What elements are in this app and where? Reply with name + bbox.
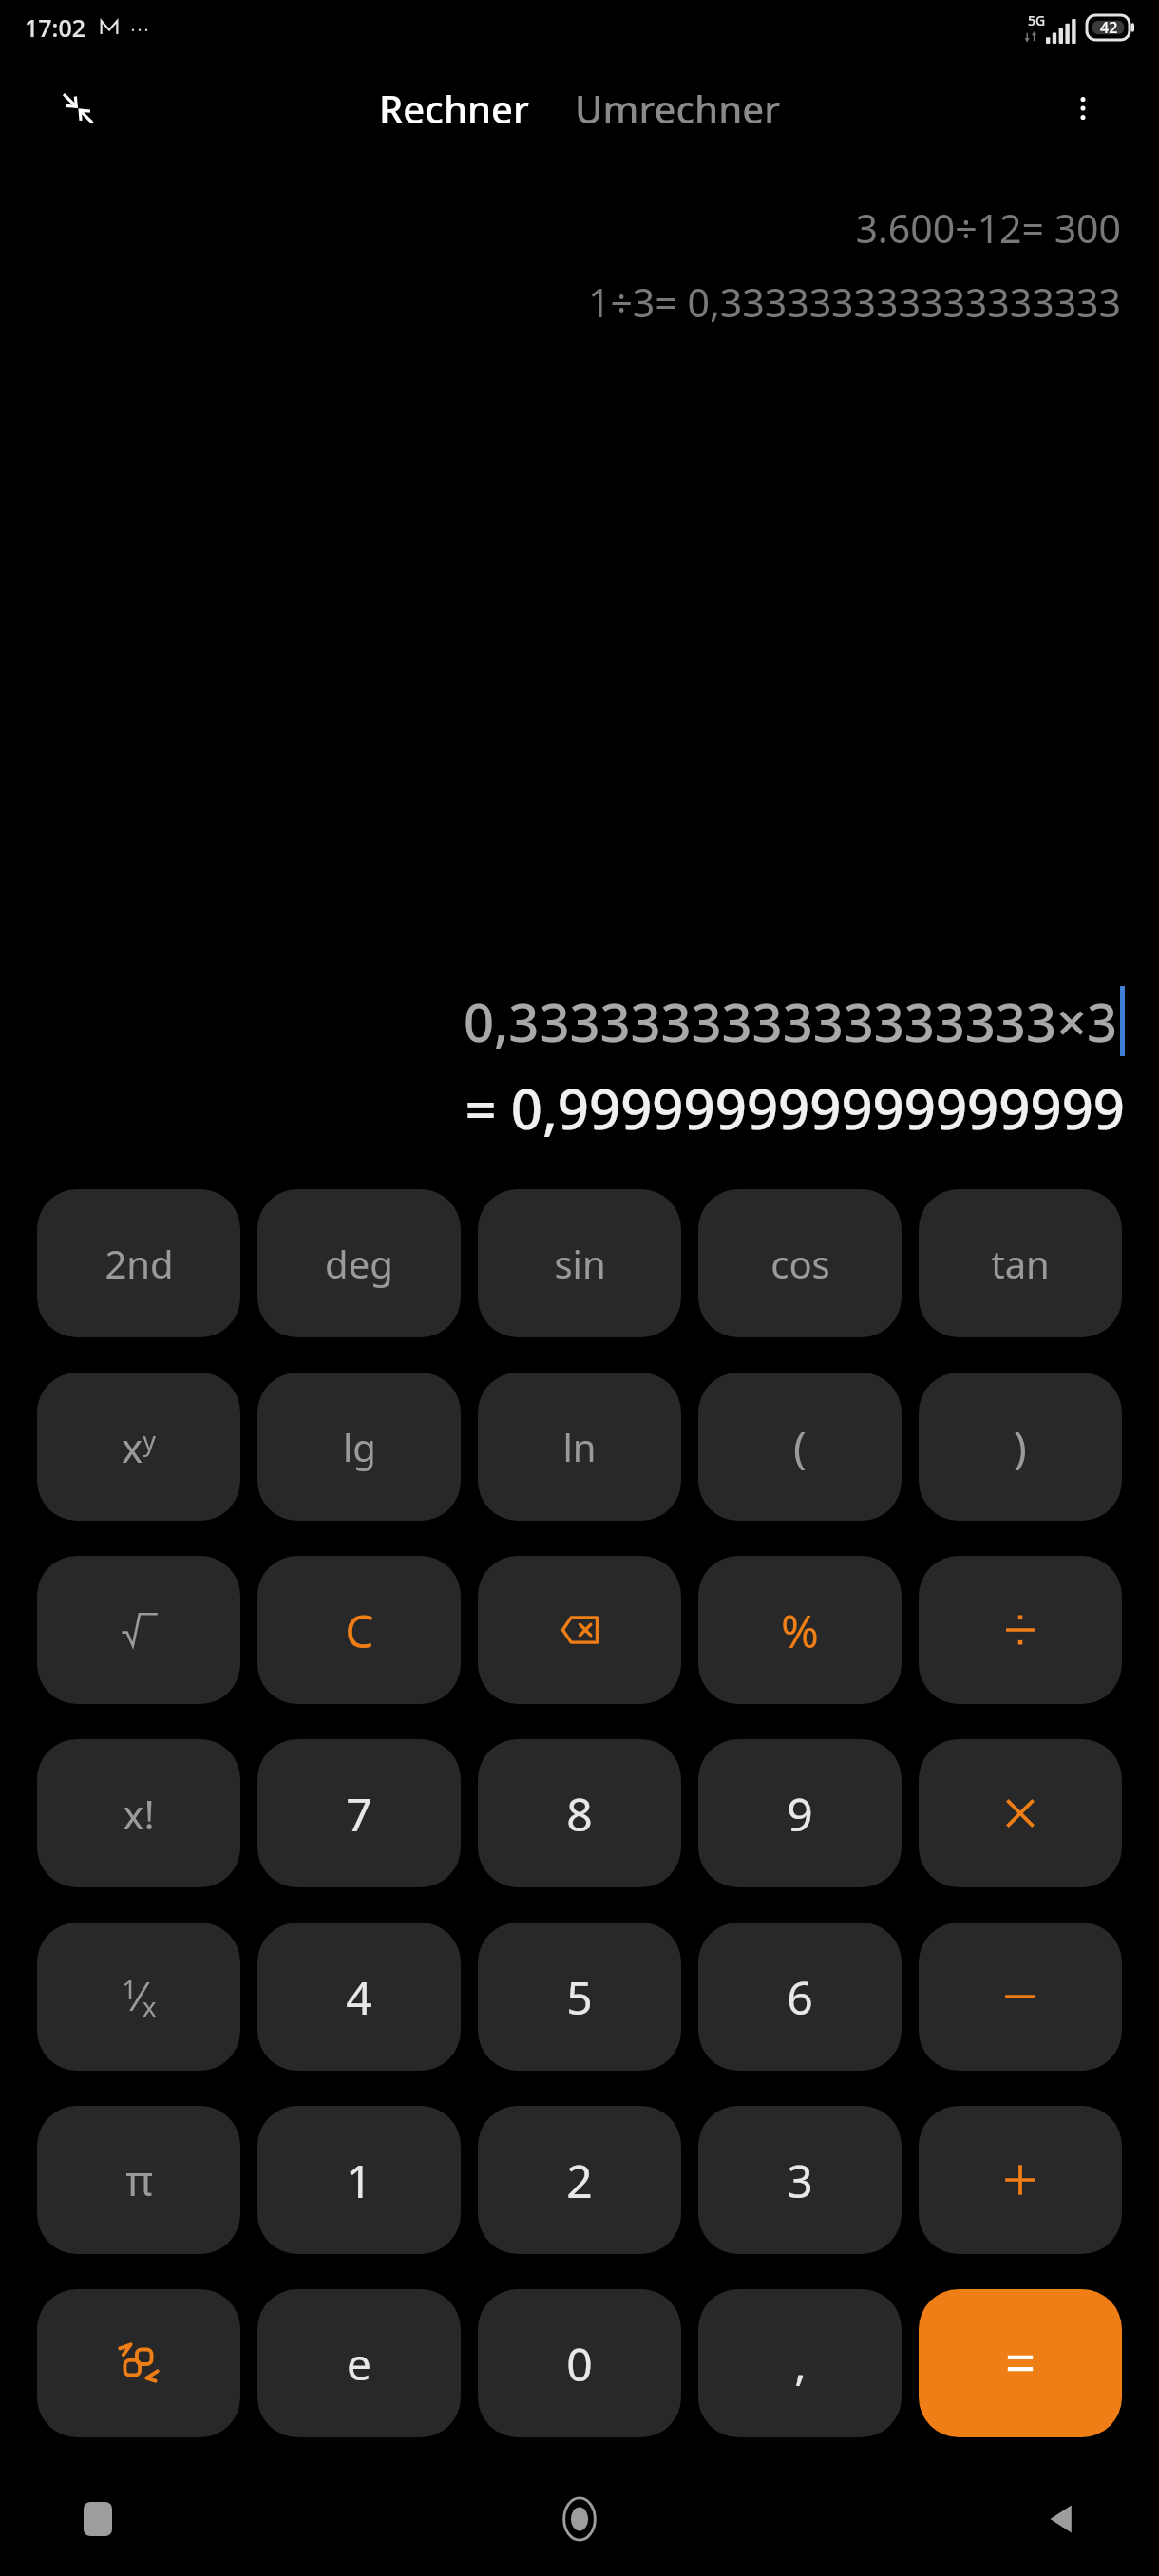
button[interactable]: Equals: [919, 2289, 1122, 2437]
button[interactable]: 5: [478, 1923, 681, 2071]
staticText: 8: [566, 1783, 593, 1845]
button[interactable]: 9: [698, 1739, 902, 1887]
button[interactable]: Multiply: [919, 1739, 1122, 1887]
button[interactable]: e: [257, 2289, 461, 2437]
staticText: e: [347, 2334, 371, 2394]
button[interactable]: 8: [478, 1739, 681, 1887]
staticText: lg: [343, 1421, 376, 1472]
staticText: ,: [794, 2334, 807, 2394]
button[interactable]: sin: [478, 1189, 681, 1337]
staticText: 17:02: [25, 11, 86, 44]
button[interactable]: 3.600÷12= 300: [855, 201, 1121, 255]
staticText: Rechner: [379, 83, 529, 134]
staticText: 2nd: [104, 1238, 174, 1289]
button[interactable]: %: [698, 1556, 902, 1704]
button[interactable]: Divide: [919, 1556, 1122, 1704]
button[interactable]: deg: [257, 1189, 461, 1337]
button[interactable]: Square root of x: [37, 1556, 240, 1704]
staticText: cos: [770, 1238, 830, 1289]
button[interactable]: ,: [698, 2289, 902, 2437]
button[interactable]: lg: [257, 1373, 461, 1521]
staticText: 0,333333333333333333×3: [464, 985, 1117, 1057]
button[interactable]: x!: [37, 1739, 240, 1887]
staticText: Umrechner: [575, 83, 781, 134]
button[interactable]: Unit converter: [37, 2289, 240, 2437]
button[interactable]: 0: [478, 2289, 681, 2437]
staticText: 9: [787, 1783, 813, 1845]
staticText: ): [1014, 1417, 1027, 1477]
button[interactable]: Back: [1020, 2478, 1102, 2560]
button[interactable]: ln: [478, 1373, 681, 1521]
staticText: 1: [346, 2150, 372, 2211]
button[interactable]: Rechner: [370, 75, 539, 142]
button[interactable]: Plus: [919, 2106, 1122, 2254]
button[interactable]: Home: [539, 2478, 620, 2560]
button[interactable]: More options: [1049, 74, 1117, 142]
button[interactable]: Minus: [919, 1923, 1122, 2071]
button[interactable]: xy: [37, 1373, 240, 1521]
button[interactable]: 2: [478, 2106, 681, 2254]
staticText: %: [781, 1600, 819, 1661]
staticText: 3: [787, 2150, 813, 2211]
staticText: ln: [562, 1421, 597, 1472]
staticText: deg: [325, 1238, 393, 1289]
staticText: 6: [787, 1966, 813, 2028]
staticText: C: [345, 1600, 374, 1661]
staticText: 2: [566, 2150, 593, 2211]
staticText: π: [125, 2151, 153, 2208]
button[interactable]: cos: [698, 1189, 902, 1337]
button[interactable]: 6: [698, 1923, 902, 2071]
button[interactable]: 4: [257, 1923, 461, 2071]
button[interactable]: One over x: [37, 1923, 240, 2071]
button[interactable]: Collapse: [44, 74, 112, 142]
staticText: 42: [1100, 17, 1118, 38]
staticText: 7: [346, 1783, 372, 1845]
staticText: 0: [566, 2333, 593, 2395]
staticText: (: [793, 1417, 807, 1477]
staticText: tan: [991, 1238, 1050, 1289]
staticText: 4: [346, 1966, 372, 2028]
button[interactable]: Clear: [257, 1556, 461, 1704]
button[interactable]: π: [37, 2106, 240, 2254]
button[interactable]: 2nd: [37, 1189, 240, 1337]
staticText: 1⁄x: [122, 1968, 157, 2025]
button[interactable]: Recent apps: [57, 2478, 139, 2560]
staticText: = 0,999999999999999999: [465, 1070, 1125, 1146]
button[interactable]: Backspace: [478, 1556, 681, 1704]
button[interactable]: 1÷3= 0,333333333333333333: [587, 275, 1121, 329]
button[interactable]: (: [698, 1373, 902, 1521]
staticText: 5G: [1028, 11, 1046, 29]
staticText: xy: [122, 1420, 156, 1474]
staticText: 5: [566, 1966, 593, 2028]
button[interactable]: 3: [698, 2106, 902, 2254]
button[interactable]: 7: [257, 1739, 461, 1887]
staticText: 1÷3= 0,333333333333333333: [587, 275, 1121, 329]
button[interactable]: Umrechner: [565, 75, 790, 142]
staticText: x!: [123, 1787, 155, 1841]
button[interactable]: 1: [257, 2106, 461, 2254]
button[interactable]: ): [919, 1373, 1122, 1521]
button[interactable]: tan: [919, 1189, 1122, 1337]
staticText: 3.600÷12= 300: [855, 201, 1121, 255]
staticText: sin: [554, 1238, 606, 1289]
